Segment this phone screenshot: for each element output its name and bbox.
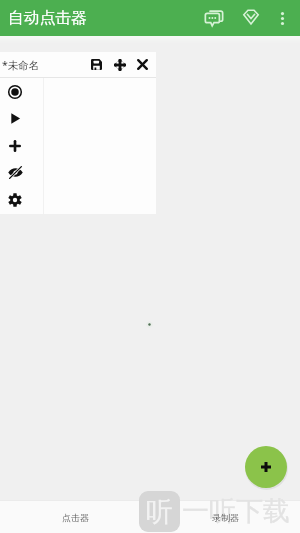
button[interactable]: 录制器	[150, 501, 300, 533]
button[interactable]: Add action	[0, 132, 30, 159]
button[interactable]: Add	[245, 446, 287, 488]
button[interactable]: Hide	[0, 159, 30, 186]
button[interactable]: Close	[131, 52, 154, 77]
button[interactable]: More options	[268, 0, 297, 36]
staticText: *未命名	[2, 58, 85, 72]
button[interactable]: Premium	[234, 0, 268, 36]
button[interactable]: Play	[0, 105, 30, 132]
staticText: 自动点击器	[8, 8, 193, 28]
button[interactable]: Settings	[0, 186, 30, 213]
button[interactable]: Forum	[193, 0, 234, 36]
staticText: 点击器	[62, 512, 89, 523]
staticText: 录制器	[212, 512, 239, 523]
button[interactable]: 点击器	[0, 501, 150, 533]
staticText: 听	[146, 495, 173, 529]
button[interactable]: Move	[108, 52, 131, 77]
staticText: 一听下载	[182, 494, 290, 528]
button[interactable]: Save	[85, 52, 108, 77]
button[interactable]: Record	[0, 78, 30, 105]
